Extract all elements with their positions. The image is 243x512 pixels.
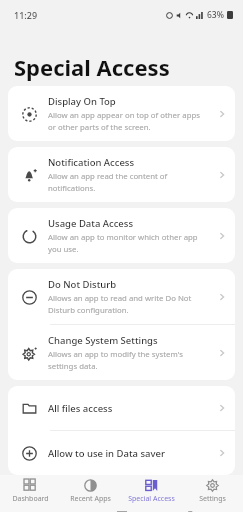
staticText: Special Access	[14, 52, 170, 82]
button[interactable]: Allow to use in Data saver	[8, 431, 235, 475]
staticText: 63%	[207, 9, 224, 21]
button[interactable]: Usage Data Access	[8, 208, 235, 263]
staticText: Change System Settings	[48, 334, 158, 347]
staticText: 11:29	[14, 9, 38, 21]
staticText: Special Access	[128, 494, 175, 504]
button[interactable]: Notification Access	[8, 147, 235, 202]
button[interactable]: Special Access	[121, 475, 182, 512]
staticText: All files access	[48, 402, 217, 415]
button[interactable]: Do Not Disturb	[8, 269, 235, 324]
staticText: Allow to use in Data saver	[48, 447, 217, 460]
button[interactable]: Settings	[182, 475, 243, 512]
staticText: Settings	[199, 494, 226, 504]
staticText: Recent Apps	[70, 494, 111, 504]
staticText: Do Not Disturb	[48, 278, 117, 291]
staticText: Allow an app appear on top of other apps…	[48, 110, 200, 132]
staticText: Allow an app to monitor which other app …	[48, 232, 198, 254]
button[interactable]: Dashboard	[0, 475, 60, 512]
button[interactable]: All files access	[8, 386, 235, 430]
staticText: Allows an app to modify the system's set…	[48, 349, 183, 371]
staticText: Allow an app read the content of notific…	[48, 171, 168, 193]
staticText: Notification Access	[48, 156, 135, 169]
staticText: Display On Top	[48, 95, 116, 108]
staticText: Allows an app to read and write Do Not D…	[48, 293, 192, 315]
button[interactable]: Recent Apps	[60, 475, 121, 512]
button[interactable]: Change System Settings	[8, 325, 235, 380]
staticText: Usage Data Access	[48, 217, 134, 230]
staticText: Dashboard	[12, 494, 49, 504]
button[interactable]: Display On Top	[8, 86, 235, 141]
